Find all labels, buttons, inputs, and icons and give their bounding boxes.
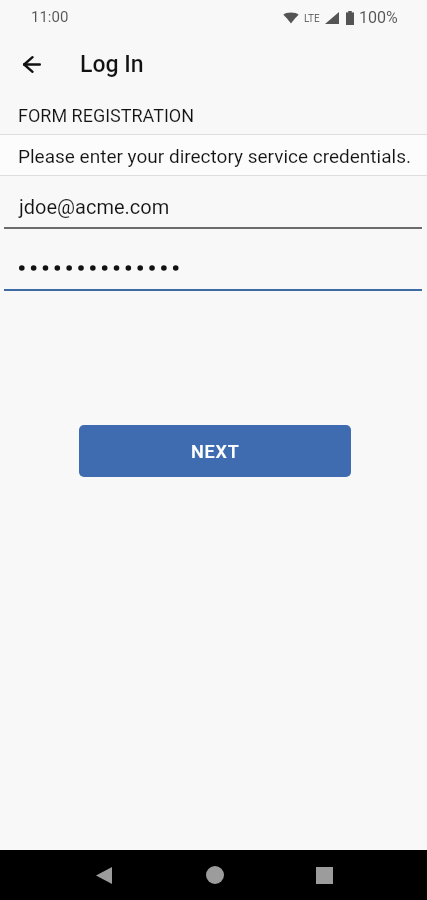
button[interactable]: Back bbox=[10, 42, 54, 86]
button[interactable]: Recent apps bbox=[284, 850, 364, 900]
staticText: NEXT bbox=[191, 441, 240, 462]
staticText: jdoe@acme.com bbox=[19, 195, 170, 218]
staticText: LTE bbox=[304, 13, 320, 25]
button[interactable]: NEXT bbox=[79, 425, 351, 477]
staticText: FORM REGISTRATION bbox=[18, 105, 195, 126]
staticText: Log In bbox=[80, 51, 144, 78]
staticText: 11:00 bbox=[31, 8, 69, 26]
button[interactable]: Back bbox=[64, 850, 144, 900]
button[interactable]: Home bbox=[175, 850, 255, 900]
staticText: 100% bbox=[359, 8, 398, 27]
staticText: Please enter your directory service cred… bbox=[18, 145, 411, 167]
